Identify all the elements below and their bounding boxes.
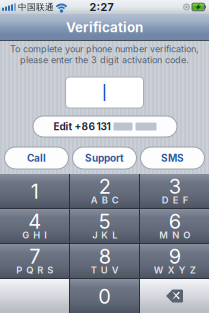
staticText: 3 [169,174,181,199]
button[interactable]: Call [4,147,68,169]
staticText: G H I [22,229,47,241]
button[interactable]: Delete [140,279,209,313]
staticText: D E F [162,194,188,206]
staticText: T U V [91,264,119,276]
button[interactable]: 7 [0,244,69,278]
staticText: Edit +86 131 [53,120,110,133]
staticText: 0 [98,284,111,309]
staticText: 1 [31,179,39,204]
staticText: W X Y Z [154,264,196,276]
staticText: 9 [169,244,181,269]
staticText: 8 [99,244,111,269]
button[interactable]: 6 [140,209,209,243]
staticText: Verification [66,19,143,35]
button[interactable]: 5 [70,209,139,243]
staticText: 7 [29,244,40,269]
button[interactable]: 8 [70,244,139,278]
button[interactable]: 0 [70,279,139,313]
staticText: please enter the 3 digit activation code… [20,54,189,65]
button[interactable]: SMS [140,147,204,169]
button[interactable]: Edit +86 131 [33,116,177,137]
staticText: Call [27,152,46,164]
staticText: 2:27 [89,0,113,13]
staticText: 4 [28,209,41,234]
staticText: P Q R S [16,264,53,276]
staticText: 中国联通 [18,1,54,12]
staticText: M N O [159,229,190,241]
button[interactable]: 2 [70,174,139,208]
button[interactable]: Support [72,147,136,169]
staticText: 5 [99,209,111,234]
staticText: To complete your phone number verificati… [10,43,199,54]
button[interactable]: 1 [0,174,69,208]
button[interactable]: 4 [0,209,69,243]
button[interactable]: 9 [140,244,209,278]
staticText: 6 [169,209,181,234]
staticText: Support [85,152,124,164]
staticText: J K L [92,229,117,241]
button[interactable]: Blank [0,279,69,313]
staticText: A B C [91,194,119,206]
button[interactable]: 3 [140,174,209,208]
staticText: 2 [99,174,111,199]
staticText: SMS [161,152,184,164]
